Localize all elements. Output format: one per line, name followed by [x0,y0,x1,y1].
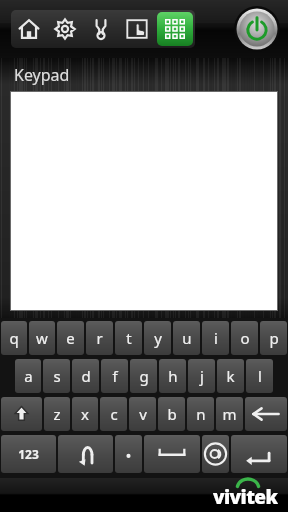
button[interactable]: Tools [83,10,119,48]
button[interactable]: Home [11,10,47,48]
button[interactable]: x [72,397,98,431]
button[interactable]: Settings [47,10,83,48]
button[interactable]: q [1,321,27,355]
button[interactable]: Keypad [157,12,193,46]
staticText: q [9,328,19,348]
staticText: b [167,404,177,424]
button[interactable]: z [44,397,70,431]
staticText: c [110,404,118,424]
button[interactable]: h [159,359,186,393]
button[interactable]: At sign [202,435,229,473]
button[interactable]: Escape [58,435,113,473]
staticText: i [214,328,218,348]
staticText: y [154,328,162,348]
staticText: d [81,366,91,386]
button[interactable]: i [202,321,229,355]
staticText: f [112,366,118,386]
button[interactable]: j [188,359,215,393]
button[interactable]: f [101,359,128,393]
button[interactable]: w [29,321,55,355]
staticText: e [66,328,75,348]
staticText: x [81,404,89,424]
staticText: u [182,328,192,348]
button[interactable]: o [231,321,258,355]
button[interactable]: k [217,359,244,393]
staticText: 123 [18,446,39,462]
staticText: m [222,404,237,424]
button[interactable]: u [173,321,200,355]
staticText: j [200,366,204,386]
staticText: v [139,404,147,424]
staticText: h [168,366,178,386]
staticText: z [53,404,61,424]
button[interactable]: e [57,321,84,355]
button[interactable]: y [144,321,171,355]
button[interactable]: Space [144,435,200,473]
button[interactable]: Touch [119,10,155,48]
staticText: p [269,328,279,348]
button[interactable]: s [43,359,70,393]
button[interactable]: r [86,321,113,355]
staticText: t [126,328,132,348]
staticText: a [24,366,33,386]
button[interactable]: b [158,397,185,431]
button[interactable]: l [246,359,273,393]
staticText: k [226,366,235,386]
button[interactable]: Period [115,435,142,473]
staticText: r [96,328,103,348]
button[interactable]: m [216,397,243,431]
button[interactable]: t [115,321,142,355]
button[interactable]: c [100,397,127,431]
button[interactable]: Backspace [245,397,287,431]
button[interactable]: g [130,359,157,393]
staticText: vivitek [213,484,278,510]
button[interactable]: v [129,397,156,431]
button[interactable]: Enter [231,435,287,473]
staticText: s [53,366,61,386]
staticText: o [240,328,250,348]
staticText: l [258,366,262,386]
button[interactable]: 123 [1,435,56,473]
staticText: Keypad [14,64,70,86]
button[interactable]: a [15,359,41,393]
button[interactable]: Power [234,6,280,52]
staticText: n [196,404,206,424]
staticText: w [36,328,48,348]
button[interactable]: Shift [1,397,42,431]
button[interactable]: n [187,397,214,431]
button[interactable]: p [260,321,287,355]
staticText: g [139,366,149,386]
button[interactable]: d [72,359,99,393]
